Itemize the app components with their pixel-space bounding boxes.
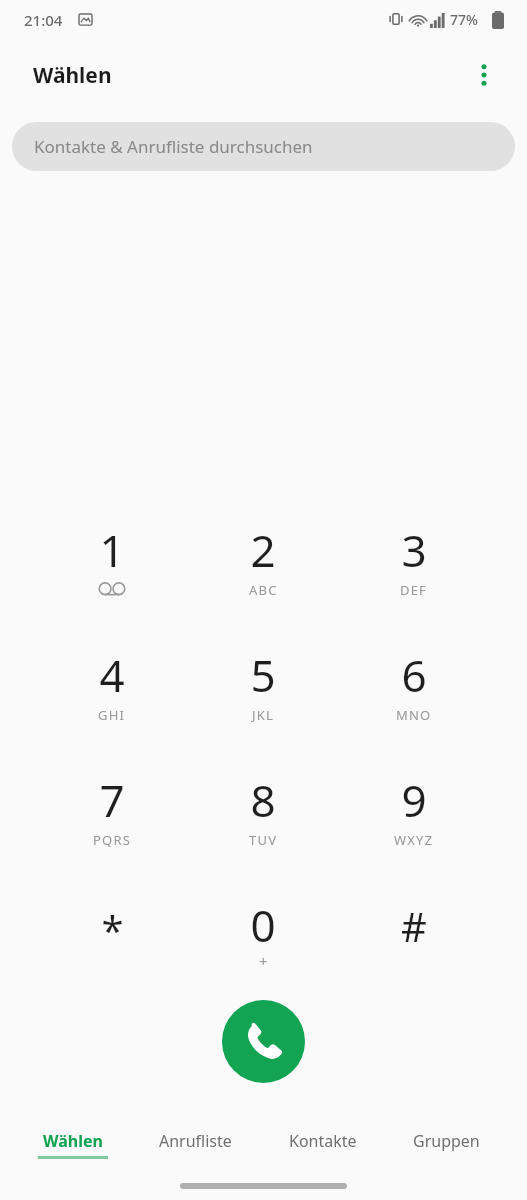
staticText: 77% [450,10,478,29]
staticText: Wählen [33,61,112,90]
staticText: 8 [250,770,276,830]
staticText: Anrufliste [159,1130,232,1152]
staticText: 21:04 [24,10,63,30]
button[interactable]: 2 [207,514,319,626]
button[interactable]: # [358,889,470,1001]
button[interactable]: Anrufen [222,1000,305,1083]
staticText: 9 [401,770,427,830]
button[interactable]: 8 [207,764,319,876]
staticText: GHI [98,706,126,724]
staticText: TUV [249,831,278,849]
staticText: Wählen [43,1130,103,1152]
button[interactable]: Anrufliste [131,1118,259,1170]
button[interactable]: Kontakte [261,1118,385,1170]
staticText: * [101,902,124,956]
staticText: + [259,951,268,971]
button[interactable]: 3 [358,514,470,626]
staticText: 2 [250,520,276,580]
button[interactable]: 4 [56,639,168,751]
button[interactable]: Weitere Optionen [462,53,506,97]
staticText: WXYZ [394,831,434,849]
button[interactable]: 6 [358,639,470,751]
button[interactable]: Wählen [13,1118,133,1170]
button[interactable]: 0 [207,889,319,1001]
button[interactable]: 7 [56,764,168,876]
staticText: JKL [252,706,275,724]
button[interactable]: Gruppen [385,1118,507,1170]
staticText: 1 [99,520,125,580]
staticText: PQRS [93,831,132,849]
staticText: Kontakte [289,1130,357,1152]
staticText: 0 [250,895,276,955]
staticText: Gruppen [413,1130,480,1152]
staticText: Kontakte & Anrufliste durchsuchen [34,135,313,158]
staticText: 7 [99,770,125,830]
staticText: # [401,899,427,953]
staticText: DEF [400,581,428,599]
staticText: 3 [401,520,427,580]
button[interactable]: * [56,889,168,1001]
button[interactable]: 5 [207,639,319,751]
staticText: 6 [401,645,427,705]
staticText: MNO [396,706,432,724]
button[interactable]: 1 [56,514,168,626]
button[interactable]: 9 [358,764,470,876]
staticText: 4 [99,645,125,705]
button[interactable]: Kontakte & Anrufliste durchsuchen [12,122,515,171]
staticText: ABC [249,581,278,599]
staticText: 5 [250,645,276,705]
